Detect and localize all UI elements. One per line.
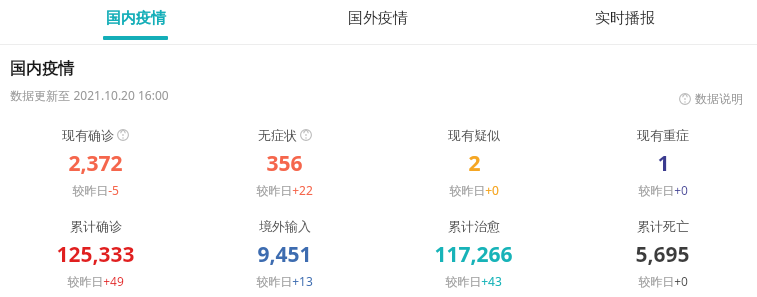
button[interactable]: 累计确诊 [0, 218, 190, 289]
button[interactable]: 实时播报 [585, 0, 665, 44]
button[interactable]: 无症状 [190, 127, 379, 198]
staticText: 无症状 [258, 127, 297, 143]
staticText: 2 [468, 149, 481, 178]
staticText: 累计治愈 [448, 218, 500, 234]
button[interactable]: 境外输入 [190, 218, 379, 289]
staticText: 较昨日+0 [638, 182, 688, 198]
staticText: 境外输入 [259, 218, 311, 234]
staticText: 国外疫情 [348, 9, 408, 28]
staticText: 较昨日+49 [67, 273, 124, 289]
other: Help [300, 129, 312, 141]
staticText: 5,695 [635, 240, 690, 269]
staticText: 现有确诊 [62, 127, 114, 143]
staticText: 数据说明 [695, 91, 743, 106]
staticText: 数据更新至 2021.10.20 16:00 [10, 87, 169, 103]
button[interactable]: 国外疫情 [338, 0, 418, 44]
staticText: 累计死亡 [637, 218, 689, 234]
other: Help [679, 93, 691, 105]
staticText: 较昨日+13 [256, 273, 313, 289]
button[interactable]: 现有重症 [568, 127, 757, 198]
staticText: 国内疫情 [106, 9, 166, 28]
button[interactable]: 累计治愈 [379, 218, 568, 289]
button[interactable]: 累计死亡 [568, 218, 757, 289]
staticText: 2,372 [68, 149, 123, 178]
staticText: 较昨日-5 [72, 182, 119, 198]
staticText: 356 [266, 149, 303, 178]
staticText: 国内疫情 [10, 59, 74, 79]
staticText: 现有重症 [637, 127, 689, 143]
staticText: 现有疑似 [448, 127, 500, 143]
staticText: 较昨日+0 [449, 182, 499, 198]
staticText: 1 [657, 149, 670, 178]
staticText: 实时播报 [595, 9, 655, 28]
button[interactable]: 现有疑似 [379, 127, 568, 198]
staticText: 较昨日+22 [256, 182, 313, 198]
button[interactable]: 国内疫情 [103, 0, 168, 44]
staticText: 117,266 [434, 240, 513, 269]
button[interactable]: Help [677, 89, 745, 108]
staticText: 9,451 [257, 240, 312, 269]
staticText: 较昨日+43 [445, 273, 502, 289]
button[interactable]: 现有确诊 [0, 127, 190, 198]
staticText: 125,333 [56, 240, 135, 269]
staticText: 累计确诊 [70, 218, 122, 234]
other: Help [117, 129, 129, 141]
staticText: 较昨日+0 [638, 273, 688, 289]
